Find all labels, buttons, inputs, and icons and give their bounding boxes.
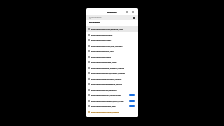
staticText: android.permission.ACCESS_NETWORK_STATE [91,28,123,30]
button[interactable]: android.permission.INTERNET [86,32,138,37]
staticText: android.permission.SCHEDULE_EXACT_ALARM [91,100,124,102]
staticText: android.permission.WAKE_LOCK [91,50,114,52]
staticText: android.permission.MANAGE_STORAGE [91,111,119,113]
staticText: android.permission.WRITE_EXTERNAL_STORAG… [91,72,125,74]
button[interactable]: android.permission.WRITE_EXTERNAL_STORAG… [86,70,138,76]
button[interactable]: Filter [125,10,128,13]
button[interactable]: android.permission.BLUETOOTH_CONNECT [86,76,138,81]
button[interactable]: Toggle permission [129,100,135,102]
staticText: android.permission.WAKE_LOCK [91,50,114,52]
staticText: android.permission.POST_NOTIFICATIONS [91,94,121,96]
staticText: uses-permission [89,22,100,24]
staticText: android.permission.ACCESS_FINE_LOCATION [91,45,123,47]
button[interactable]: android.permission.USE_BIOMETRIC [86,87,138,92]
staticText: android.permission.FOREGROUND_SERVICE [91,83,122,85]
staticText: android.permission.VIBRATE [91,56,112,58]
staticText: uses-permission [89,22,100,24]
button[interactable]: Search permission [86,15,138,20]
staticText: android.permission.BLUETOOTH_CONNECT [91,78,122,80]
staticText: android.permission.INTERNET [91,34,113,36]
staticText: android.permission.MANAGE_STORAGE [91,111,119,113]
staticText: android.permission.READ_EXTERNAL_STORAGE [91,67,125,69]
staticText: android.permission.ACCESS_FINE_LOCATION [91,45,123,47]
button[interactable]: android.permission.POST_NOTIFICATIONS [86,92,138,98]
button[interactable]: android.permission.CAMERA [86,37,138,43]
button[interactable]: android.permission.RECEIVE_BOOT [86,103,138,109]
staticText: android.permission.FOREGROUND_SERVICE [91,83,122,85]
button[interactable]: android.permission.ACCESS_FINE_LOCATION [86,43,138,48]
staticText: android.permission.USE_BIOMETRIC [91,89,117,91]
staticText: android.permission.CAMERA [91,39,112,41]
staticText: android.permission.INTERNET [91,34,113,36]
staticText: android.permission.SCHEDULE_EXACT_ALARM [91,100,124,102]
button[interactable]: Toggle permission [129,105,135,107]
button[interactable]: android.permission.RECORD_AUDIO [86,59,138,65]
staticText: android.permission.CAMERA [91,39,112,41]
button[interactable]: android.permission.MANAGE_STORAGE [86,109,138,114]
staticText: Permissions [107,11,117,13]
staticText: android.permission.BLUETOOTH_CONNECT [91,78,122,80]
staticText: android.permission.WRITE_EXTERNAL_STORAG… [91,72,125,74]
staticText: android.permission.VIBRATE [91,56,112,58]
button[interactable]: android.permission.WAKE_LOCK [86,48,138,54]
staticText: Permissions [107,11,117,13]
staticText: android.permission.RECORD_AUDIO [91,61,117,63]
staticText: android.permission.USE_BIOMETRIC [91,89,117,91]
button[interactable]: android.permission.ACCESS_NETWORK_STATE [86,26,138,32]
button[interactable]: android.permission.SCHEDULE_EXACT_ALARM [86,98,138,103]
staticText: android.permission.RECORD_AUDIO [91,61,117,63]
staticText: Permissions [107,11,117,13]
button[interactable]: android.permission.VIBRATE [86,54,138,59]
staticText: android.permission.POST_NOTIFICATIONS [91,94,121,96]
staticText: android.permission.READ_EXTERNAL_STORAGE [91,67,125,69]
button[interactable]: android.permission.FOREGROUND_SERVICE [86,81,138,87]
button[interactable]: android.permission.READ_EXTERNAL_STORAGE [86,65,138,70]
button[interactable]: More options [131,10,134,13]
staticText: uses-permission [89,22,100,24]
button[interactable]: Toggle permission [129,94,135,96]
staticText: android.permission.RECEIVE_BOOT [91,105,116,107]
staticText: android.permission.RECEIVE_BOOT [91,105,116,107]
staticText: android.permission.ACCESS_NETWORK_STATE [91,28,123,30]
staticText: Search permission [91,17,102,19]
